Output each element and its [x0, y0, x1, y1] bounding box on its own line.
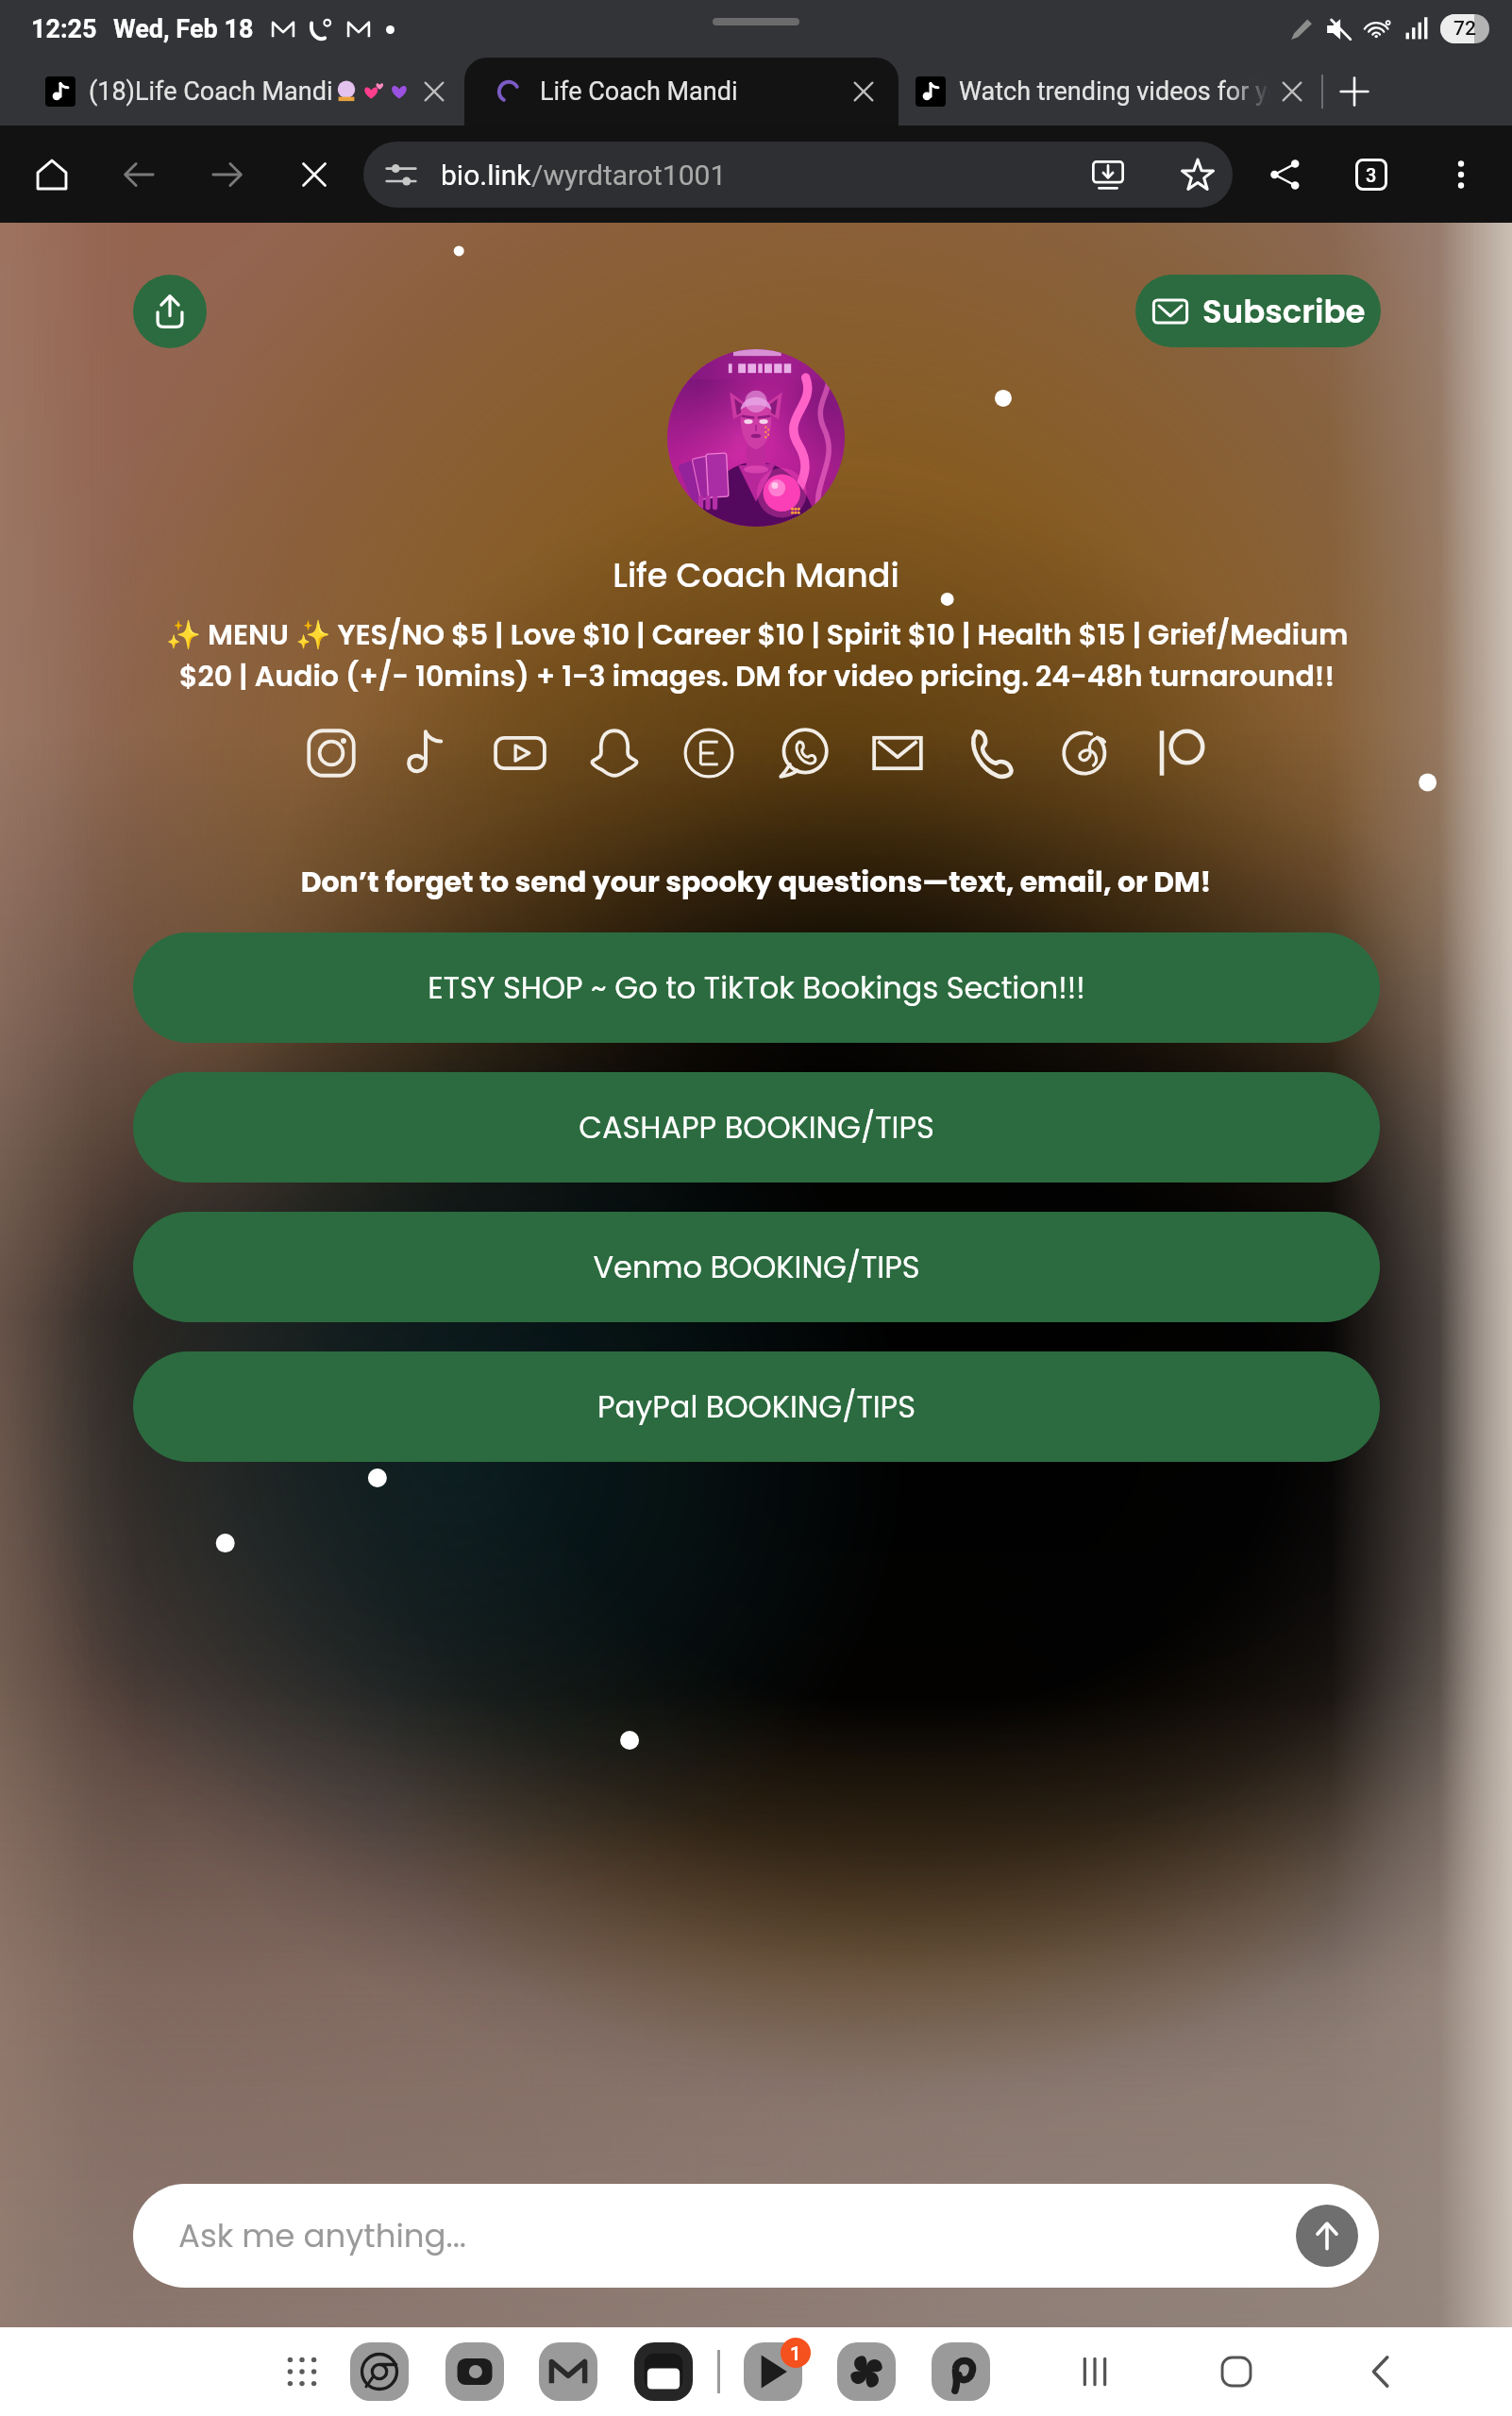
button[interactable]: Calendar: [631, 2340, 696, 2404]
button[interactable]: New tab: [1323, 60, 1386, 123]
button[interactable]: Life Coach Mandi: [464, 58, 899, 126]
staticText: ETSY SHOP ~ Go to TikTok Bookings Sectio…: [428, 966, 1085, 1009]
staticText: 1: [790, 2342, 801, 2364]
staticText: Venmo BOOKING/TIPS: [593, 1246, 920, 1288]
button[interactable]: ETSY SHOP ~ Go to TikTok Bookings Sectio…: [133, 932, 1380, 1043]
button[interactable]: Etsy: [662, 706, 756, 800]
staticText: Wed, Feb 18: [113, 14, 254, 44]
button[interactable]: Subscribe: [1135, 275, 1381, 347]
staticText: Ask me anything...: [178, 2213, 466, 2258]
button[interactable]: WhatsApp: [756, 706, 850, 800]
button[interactable]: Stop loading: [288, 148, 341, 201]
staticText: ✨ MENU ✨ YES/NO $5 | Love $10 | Career $…: [143, 615, 1371, 696]
button[interactable]: PayPal BOOKING/TIPS: [133, 1351, 1380, 1462]
button[interactable]: Phone: [945, 706, 1039, 800]
button[interactable]: Camera: [443, 2340, 507, 2404]
button[interactable]: Snapchat: [567, 706, 662, 800]
button[interactable]: Play Store: [741, 2340, 805, 2404]
button[interactable]: CASHAPP BOOKING/TIPS: [133, 1072, 1380, 1183]
button[interactable]: Back: [112, 148, 165, 201]
button[interactable]: Threads: [1039, 706, 1134, 800]
button[interactable]: Download page: [1082, 148, 1134, 201]
button[interactable]: More options: [1435, 148, 1487, 201]
button[interactable]: bio.link: [363, 142, 1233, 208]
button[interactable]: Home: [25, 148, 78, 201]
button[interactable]: Share: [1259, 148, 1312, 201]
staticText: Life Coach Mandi: [540, 76, 738, 107]
button[interactable]: Close tab: [842, 70, 885, 113]
button[interactable]: Share profile: [133, 275, 207, 348]
staticText: /wyrdtarot1001: [531, 159, 727, 192]
button[interactable]: Recents: [1059, 2336, 1131, 2408]
button[interactable]: Home: [1201, 2336, 1272, 2408]
button[interactable]: All apps: [272, 2341, 332, 2402]
button[interactable]: Email: [850, 706, 945, 800]
staticText: 3: [1366, 164, 1377, 186]
staticText: PayPal BOOKING/TIPS: [597, 1385, 916, 1428]
button[interactable]: (18)Life Coach Mandi: [0, 58, 464, 126]
button[interactable]: Ask me anything...: [133, 2184, 1379, 2288]
button[interactable]: Close tab: [1270, 70, 1314, 113]
button[interactable]: Forward: [201, 148, 254, 201]
button[interactable]: Patreon: [1134, 706, 1228, 800]
button[interactable]: YouTube: [473, 706, 567, 800]
button[interactable]: Watch trending videos for you: [899, 58, 1386, 126]
button[interactable]: Photos: [834, 2340, 899, 2404]
staticText: 72: [1453, 17, 1476, 41]
staticText: 12:25: [31, 14, 97, 44]
button[interactable]: Venmo BOOKING/TIPS: [133, 1212, 1380, 1322]
staticText: Watch trending videos for you: [959, 76, 1270, 107]
button[interactable]: Chrome: [347, 2340, 412, 2404]
button[interactable]: Switch tabs, 3 open: [1345, 148, 1398, 201]
staticText: Life Coach Mandi: [0, 552, 1512, 598]
staticText: (18)Life Coach Mandi: [89, 76, 333, 107]
button[interactable]: Gmail: [536, 2340, 600, 2404]
staticText: Don’t forget to send your spooky questio…: [0, 863, 1512, 902]
button[interactable]: Send: [1296, 2205, 1358, 2267]
button[interactable]: Pinterest: [929, 2340, 993, 2404]
staticText: bio.link: [441, 159, 531, 192]
staticText: Subscribe: [1202, 289, 1366, 334]
button[interactable]: Bookmark: [1171, 148, 1224, 201]
staticText: CASHAPP BOOKING/TIPS: [579, 1106, 934, 1149]
button[interactable]: Back: [1345, 2336, 1417, 2408]
button[interactable]: Instagram: [284, 706, 378, 800]
button[interactable]: TikTok: [378, 706, 473, 800]
button[interactable]: Close tab: [412, 70, 456, 113]
